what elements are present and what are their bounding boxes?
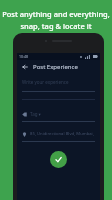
staticText: Write your experience — [22, 79, 69, 85]
staticText: Post Experience — [33, 63, 78, 71]
staticText: Tag ▾ — [30, 111, 41, 117]
button[interactable]: Submit — [50, 151, 67, 168]
button[interactable]: Write your experience — [22, 79, 95, 100]
staticText: Post anything and everything, — [2, 9, 110, 19]
staticText: 10:48 — [19, 54, 28, 59]
button[interactable]: Back — [20, 62, 30, 72]
staticText: 85, Unidirectional Blvd, Mumbai, India — [30, 131, 95, 137]
staticText: snap, tag & locate it — [20, 21, 92, 31]
button[interactable]: 85, Unidirectional Blvd, Mumbai, India — [22, 131, 95, 142]
button[interactable]: Tag ▾ — [22, 111, 95, 122]
